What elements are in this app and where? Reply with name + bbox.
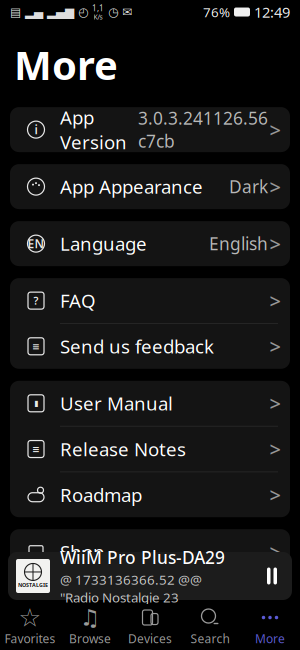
staticText: Favorites — [4, 630, 55, 646]
staticText: ♫ — [80, 605, 100, 630]
button[interactable]: More — [240, 606, 300, 648]
staticText: Shop — [60, 539, 104, 564]
button[interactable]: App Appearance — [10, 164, 290, 209]
staticText: 76% — [203, 3, 230, 21]
staticText: ? — [33, 293, 38, 308]
button[interactable]: ≡ — [10, 324, 290, 369]
staticText: EN — [27, 236, 44, 252]
staticText: WiiM Pro Plus-DA29 — [60, 546, 225, 569]
staticText: English — [209, 232, 268, 255]
staticText: Devices — [128, 630, 172, 646]
button[interactable]: Search — [180, 606, 240, 648]
staticText: > — [269, 116, 280, 143]
staticText: K/s — [93, 12, 102, 21]
button[interactable]: ☆ — [0, 606, 60, 648]
staticText: > — [269, 481, 280, 508]
staticText: @ 1733136366.52 @@ "Radio Nostalgie 23 — [60, 571, 202, 606]
staticText: i — [34, 122, 37, 138]
staticText: ≡ — [32, 341, 40, 352]
button[interactable]: ≡ — [10, 426, 290, 471]
button[interactable]: i — [10, 107, 290, 152]
button[interactable]: Shop — [10, 529, 290, 574]
staticText: Send us feedback — [60, 334, 214, 359]
staticText: ☆ — [18, 603, 41, 632]
staticText: ▤ — [10, 5, 21, 19]
staticText: ◷ — [108, 5, 118, 19]
staticText: NOSTALGIE — [18, 581, 48, 589]
staticText: More — [255, 630, 285, 646]
staticText: Release Notes — [60, 437, 186, 461]
staticText: Roadmap — [60, 482, 142, 507]
button[interactable]: EN — [10, 221, 290, 266]
staticText: > — [269, 436, 280, 462]
staticText: 12:49 — [254, 2, 290, 22]
staticText: Browse — [69, 630, 111, 646]
button[interactable]: Devices — [120, 606, 180, 648]
button[interactable]: ▮ — [10, 381, 290, 426]
staticText: ▂▄▆ — [47, 5, 74, 19]
button[interactable]: ♫ — [60, 606, 120, 648]
staticText: > — [269, 333, 280, 360]
button[interactable]: ? — [10, 278, 290, 323]
staticText: ◴ — [78, 5, 88, 19]
staticText: > — [269, 538, 280, 565]
staticText: More — [14, 38, 118, 91]
staticText: Dark — [229, 175, 268, 198]
staticText: App Appearance — [60, 174, 203, 199]
staticText: > — [269, 230, 280, 257]
staticText: FAQ — [60, 288, 96, 313]
staticText: Language — [60, 231, 147, 256]
staticText: ✉ — [122, 5, 132, 19]
staticText: App Version — [60, 105, 127, 154]
staticText: Search — [190, 630, 229, 646]
staticText: ≡ — [32, 444, 40, 454]
staticText: User Manual — [60, 391, 173, 416]
staticText: > — [269, 173, 280, 200]
staticText: 1,1 — [92, 3, 104, 13]
staticText: > — [269, 287, 280, 314]
staticText: > — [269, 390, 280, 417]
button[interactable]: Pause — [252, 554, 292, 598]
staticText: ▂▄ — [25, 5, 43, 19]
button[interactable]: Roadmap — [10, 472, 290, 517]
staticText: ▮ — [34, 399, 38, 408]
staticText: 3.0.3.241126.56c7cb — [138, 107, 268, 153]
